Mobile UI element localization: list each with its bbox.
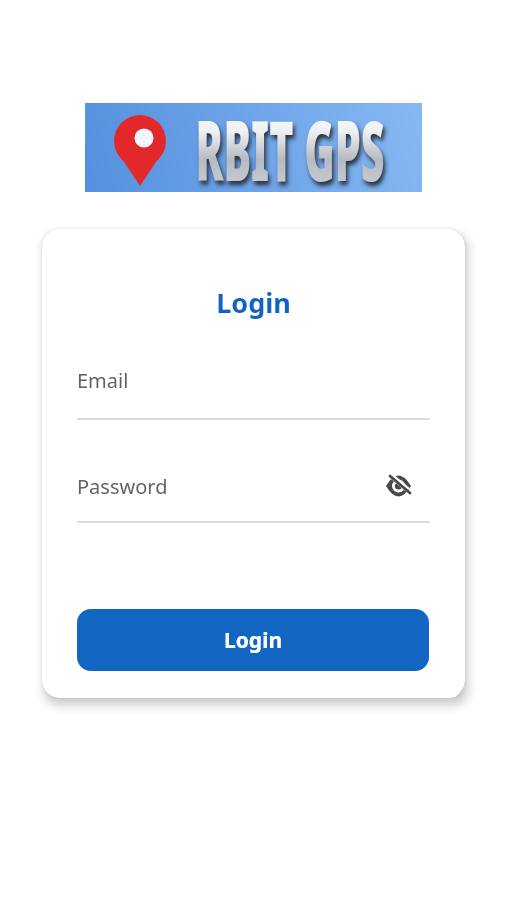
button[interactable]: Login	[77, 609, 429, 671]
staticText: Login	[42, 284, 465, 321]
staticText: Email	[77, 367, 129, 394]
staticText: Password	[77, 473, 168, 500]
button[interactable]	[381, 469, 415, 503]
staticText: RBIT GPS	[177, 91, 403, 193]
button[interactable]: Email	[77, 360, 430, 400]
staticText: Login	[224, 626, 283, 655]
button[interactable]: Password	[77, 466, 430, 506]
